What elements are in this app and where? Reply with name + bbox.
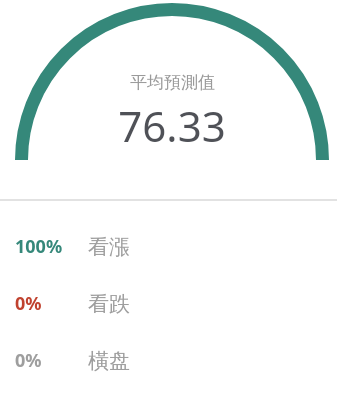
- staticText: 0%: [15, 348, 42, 373]
- staticText: 0%: [15, 291, 42, 316]
- button[interactable]: 0%: [0, 332, 344, 389]
- staticText: 平均預測值: [130, 72, 215, 93]
- staticText: 看漲: [88, 234, 130, 260]
- staticText: 看跌: [88, 291, 130, 317]
- staticText: 76.33: [118, 97, 226, 154]
- staticText: 100%: [15, 234, 63, 259]
- button[interactable]: 0%: [0, 275, 344, 332]
- staticText: 橫盘: [88, 348, 130, 374]
- button[interactable]: 100%: [0, 218, 344, 275]
